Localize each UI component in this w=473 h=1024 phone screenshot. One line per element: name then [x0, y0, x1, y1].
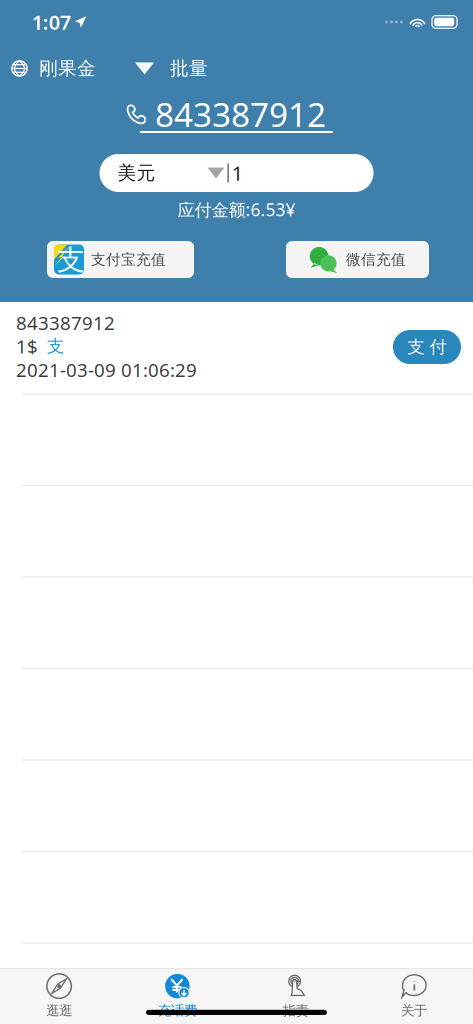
staticText: 充话费: [158, 1002, 197, 1019]
button[interactable]: 刚果金: [0, 53, 96, 84]
staticText: 支 付: [407, 336, 446, 358]
button[interactable]: 支 付: [393, 330, 461, 364]
staticText: 1: [232, 160, 243, 186]
staticText: 逛逛: [46, 1002, 72, 1019]
button[interactable]: 美元: [99, 154, 373, 192]
staticText: 批量: [170, 57, 208, 80]
staticText: 1$: [16, 334, 38, 359]
staticText: 美元: [117, 161, 155, 184]
button[interactable]: 指责: [236, 969, 355, 1024]
staticText: 微信充值: [346, 250, 406, 268]
staticText: 支: [47, 336, 64, 357]
staticText: 843387912: [155, 92, 326, 136]
staticText: 刚果金: [39, 57, 96, 80]
button[interactable]: 充话费: [118, 969, 236, 1024]
staticText: 843387912: [16, 310, 115, 335]
button[interactable]: 关于: [355, 969, 473, 1024]
button[interactable]: 支: [47, 241, 194, 278]
button[interactable]: 批量: [135, 53, 208, 84]
staticText: 支: [57, 243, 85, 277]
staticText: 2021-03-09 01:06:29: [16, 357, 197, 382]
staticText: 关于: [401, 1002, 427, 1019]
button[interactable]: 逛逛: [0, 969, 118, 1024]
staticText: 指责: [283, 1002, 309, 1019]
staticText: 支付宝充值: [91, 250, 166, 268]
staticText: 1:07: [32, 9, 71, 35]
staticText: 应付金额:6.53¥: [177, 198, 295, 221]
button[interactable]: 微信充值: [286, 241, 429, 278]
